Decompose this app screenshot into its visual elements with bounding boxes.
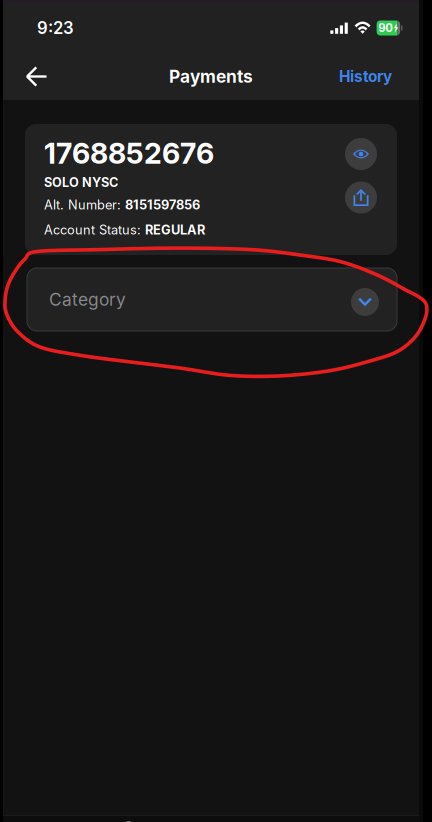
staticText: Category	[49, 289, 126, 310]
staticText: Account Status:	[44, 222, 145, 237]
button[interactable]: Back	[14, 54, 58, 98]
button[interactable]: Show account number	[345, 138, 377, 170]
button[interactable]: History	[330, 54, 401, 98]
button[interactable]: Share account details	[345, 181, 377, 213]
staticText: History	[339, 67, 392, 86]
staticText: REGULAR	[145, 222, 205, 237]
staticText: 8151597856	[125, 197, 200, 212]
staticText: Alt. Number:	[44, 197, 125, 212]
staticText: SOLO NYSC	[44, 175, 118, 190]
button[interactable]: Category	[27, 268, 397, 331]
staticText: Payments	[169, 66, 253, 87]
staticText: 1768852676	[44, 136, 214, 171]
staticText: 90	[378, 21, 393, 35]
staticText: 9:23	[37, 18, 74, 38]
button[interactable]: Home	[121, 816, 135, 822]
